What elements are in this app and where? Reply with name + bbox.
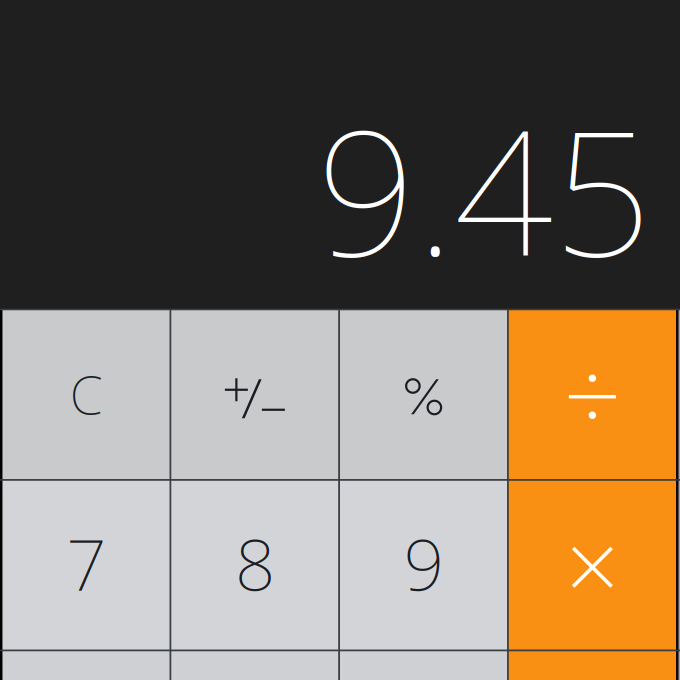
button[interactable]: 4 xyxy=(2,651,170,680)
button[interactable]: Plus Minus xyxy=(171,310,338,479)
button[interactable]: Percent xyxy=(340,310,507,479)
button[interactable]: 7 xyxy=(2,481,170,650)
staticText: 8 xyxy=(235,515,275,611)
button[interactable]: 6 xyxy=(340,651,507,680)
staticText: C xyxy=(70,357,103,430)
button[interactable]: Subtract xyxy=(509,651,676,680)
button[interactable]: 9 xyxy=(340,481,507,650)
button[interactable]: 5 xyxy=(171,651,338,680)
button[interactable]: Clear xyxy=(2,310,170,479)
button[interactable]: Divide xyxy=(509,310,676,479)
staticText: 9.45 xyxy=(317,71,652,307)
button[interactable]: Multiply xyxy=(509,481,676,650)
staticText: 9 xyxy=(404,515,444,611)
button[interactable]: 8 xyxy=(171,481,338,650)
staticText: 7 xyxy=(66,515,106,611)
